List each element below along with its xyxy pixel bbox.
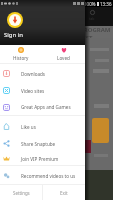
button[interactable]: Downloads	[0, 65, 85, 82]
button[interactable]: Settings	[0, 185, 42, 200]
staticText: tab	[89, 16, 95, 21]
staticText: Sign in	[4, 31, 24, 39]
button[interactable]: Exit	[43, 185, 85, 200]
button[interactable]: Loved	[42, 45, 85, 63]
staticText: tab	[18, 16, 24, 21]
button[interactable]: Join VIP Premium	[0, 152, 85, 165]
staticText: Settings	[13, 190, 30, 196]
staticText: Exit	[60, 190, 68, 196]
staticText: Share Snaptube	[21, 141, 56, 147]
staticText: Join VIP Premium	[21, 156, 59, 162]
staticText: PROGRAM LIST	[80, 26, 113, 38]
staticText: 13:36	[100, 1, 112, 7]
staticText: Video sites	[21, 88, 45, 94]
button[interactable]: Sign in	[0, 0, 85, 45]
staticText: Loved	[57, 55, 70, 61]
staticText: Downloads	[21, 71, 46, 77]
button[interactable]: Recommend videos to us	[0, 167, 85, 184]
button[interactable]: Like us	[0, 118, 85, 135]
staticText: Great Apps and Games	[21, 104, 71, 110]
button[interactable]: Great Apps and Games	[0, 99, 85, 115]
button[interactable]: Share Snaptube	[0, 135, 85, 152]
staticText: 100%	[84, 1, 96, 7]
button[interactable]: Video sites	[0, 82, 85, 99]
staticText: Like us	[21, 124, 36, 130]
button[interactable]: History	[0, 45, 42, 63]
staticText: Recommend videos to us	[21, 173, 76, 179]
staticText: History	[13, 55, 29, 61]
